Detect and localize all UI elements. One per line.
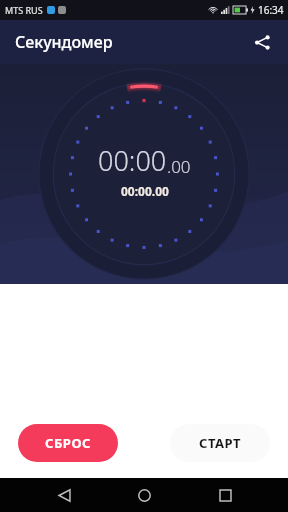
button[interactable]: СТАРТ bbox=[170, 424, 270, 462]
staticText: 00:00 bbox=[98, 142, 167, 179]
staticText: .00 bbox=[167, 155, 191, 178]
staticText: 00:00.00 bbox=[121, 183, 169, 199]
staticText: СТАРТ bbox=[199, 434, 242, 452]
staticText: Секундомер bbox=[15, 31, 113, 53]
staticText: СБРОС bbox=[45, 434, 91, 452]
button[interactable]: Share bbox=[244, 24, 280, 60]
staticText: MTS RUS bbox=[5, 4, 43, 16]
button[interactable]: СБРОС bbox=[18, 424, 118, 462]
button[interactable]: Home bbox=[127, 478, 161, 512]
staticText: 16:34 bbox=[258, 3, 284, 17]
button[interactable]: Back bbox=[47, 478, 81, 512]
button[interactable]: Recents bbox=[208, 478, 242, 512]
